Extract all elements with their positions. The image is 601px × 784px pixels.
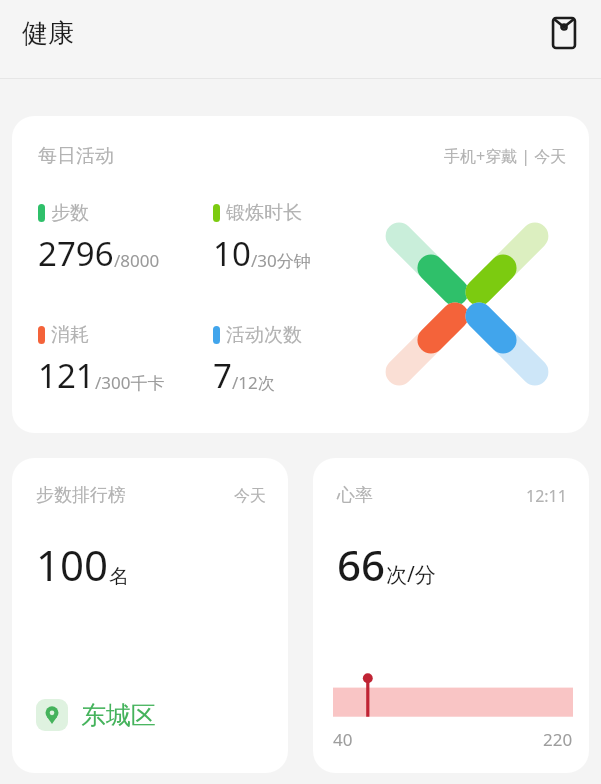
staticText: 活动次数 — [226, 323, 302, 347]
button[interactable]: 心率 — [313, 458, 589, 773]
staticText: 心率 — [337, 484, 373, 507]
staticText: 100 — [36, 536, 109, 593]
staticText: 消耗 — [51, 323, 89, 347]
staticText: 121 — [38, 353, 95, 398]
staticText: 7 — [213, 353, 232, 398]
staticText: 健康 — [22, 17, 74, 50]
staticText: /12次 — [232, 371, 275, 394]
staticText: 今天 — [234, 486, 266, 506]
button[interactable]: 步数排行榜 — [12, 458, 288, 773]
button[interactable]: Red packet — [546, 15, 582, 51]
staticText: 12:11 — [526, 485, 567, 507]
staticText: 次/分 — [386, 560, 436, 589]
staticText: 每日活动 — [38, 144, 114, 168]
staticText: 东城区 — [81, 700, 156, 731]
staticText: /300千卡 — [95, 371, 165, 394]
staticText: 手机+穿戴 | 今天 — [444, 145, 567, 167]
staticText: 220 — [543, 728, 573, 751]
staticText: 10 — [213, 231, 251, 276]
staticText: 名 — [109, 564, 129, 589]
staticText: 步数排行榜 — [36, 484, 126, 507]
staticText: 步数 — [51, 201, 89, 225]
staticText: /8000 — [114, 249, 160, 272]
button[interactable]: 每日活动 — [12, 116, 589, 433]
staticText: 40 — [333, 728, 353, 751]
staticText: 2796 — [38, 231, 114, 276]
staticText: /30分钟 — [251, 249, 311, 272]
button[interactable]: 东城区 — [36, 699, 156, 731]
staticText: 锻炼时长 — [226, 201, 302, 225]
staticText: 66 — [337, 536, 386, 593]
